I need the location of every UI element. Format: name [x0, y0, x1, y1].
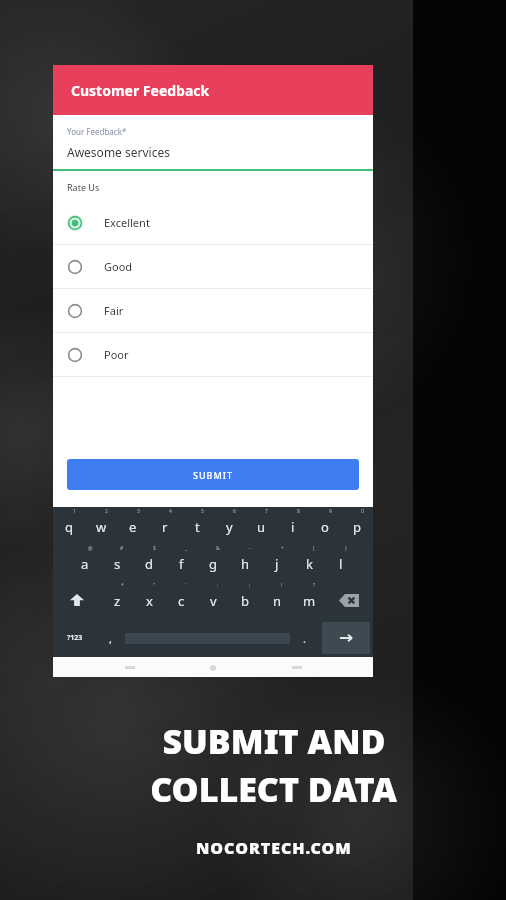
staticText: ,	[109, 631, 112, 646]
staticText: m	[303, 592, 316, 610]
button[interactable]: )	[325, 544, 357, 581]
staticText: :	[217, 582, 219, 589]
button[interactable]: 3	[117, 507, 149, 544]
other: nav	[290, 663, 304, 671]
staticText: j	[275, 555, 279, 573]
staticText: u	[257, 518, 266, 536]
staticText: ;	[249, 582, 251, 589]
staticText: n	[273, 592, 282, 610]
button[interactable]: !	[261, 581, 293, 619]
staticText: a	[81, 555, 89, 573]
staticText: k	[306, 555, 313, 573]
button[interactable]: "	[133, 581, 165, 619]
button[interactable]: -	[229, 544, 261, 581]
button[interactable]: Your Feedback*	[53, 115, 373, 169]
button[interactable]: 5	[181, 507, 213, 544]
staticText: *	[121, 582, 124, 589]
staticText: 1	[73, 508, 76, 515]
other: nav	[123, 663, 137, 671]
staticText: l	[339, 555, 343, 573]
button[interactable]: Backspace	[325, 581, 373, 619]
staticText: SUBMIT	[193, 469, 233, 481]
staticText: w	[96, 518, 107, 536]
button[interactable]: Good	[53, 245, 373, 288]
staticText: x	[146, 592, 153, 610]
button[interactable]: 9	[309, 507, 341, 544]
staticText: '	[185, 582, 187, 589]
button[interactable]: Poor	[53, 333, 373, 376]
staticText: -	[249, 545, 251, 552]
button[interactable]: _	[165, 544, 197, 581]
button[interactable]: :	[197, 581, 229, 619]
button[interactable]: ,	[96, 619, 125, 657]
button[interactable]: '	[165, 581, 197, 619]
staticText: 6	[233, 508, 236, 515]
button[interactable]: 8	[277, 507, 309, 544]
other: nav	[206, 663, 220, 671]
staticText: v	[210, 592, 217, 610]
staticText: (	[313, 545, 315, 552]
button[interactable]: 7	[245, 507, 277, 544]
button[interactable]: .	[290, 619, 319, 657]
staticText: SUBMIT AND	[162, 718, 386, 764]
staticText: #	[120, 545, 124, 552]
staticText: _	[185, 545, 188, 552]
button[interactable]: 4	[149, 507, 181, 544]
staticText: 9	[329, 508, 332, 515]
button[interactable]: *	[101, 581, 133, 619]
staticText: e	[129, 518, 137, 536]
button[interactable]: Fair	[53, 289, 373, 332]
button[interactable]: &	[197, 544, 229, 581]
button[interactable]: SUBMIT	[67, 459, 359, 490]
button[interactable]: 0	[341, 507, 373, 544]
staticText: t	[195, 518, 200, 536]
staticText: q	[65, 518, 73, 536]
button[interactable]: 6	[213, 507, 245, 544]
button[interactable]: ?123	[53, 619, 96, 657]
staticText: "	[153, 582, 156, 589]
button[interactable]: (	[293, 544, 325, 581]
staticText: y	[226, 518, 233, 536]
staticText: Customer Feedback	[71, 81, 210, 100]
staticText: Good	[104, 259, 133, 274]
staticText: 8	[297, 508, 300, 515]
staticText: h	[241, 555, 250, 573]
button[interactable]: ?	[293, 581, 325, 619]
staticText: 2	[105, 508, 108, 515]
button[interactable]: ;	[229, 581, 261, 619]
button[interactable]: $	[133, 544, 165, 581]
button[interactable]: 1	[53, 507, 85, 544]
staticText: c	[178, 592, 185, 610]
staticText: COLLECT DATA	[150, 766, 397, 812]
staticText: i	[291, 518, 295, 536]
staticText: g	[209, 555, 217, 573]
staticText: Awesome services	[67, 144, 170, 160]
staticText: &	[216, 545, 220, 552]
staticText: ?	[313, 582, 316, 589]
button[interactable]: 2	[85, 507, 117, 544]
staticText: 5	[201, 508, 204, 515]
staticText: d	[145, 555, 153, 573]
staticText: )	[345, 545, 347, 552]
button[interactable]: Excellent	[53, 201, 373, 244]
button[interactable]: +	[261, 544, 293, 581]
button[interactable]: Enter	[322, 622, 370, 654]
staticText: z	[114, 592, 121, 610]
staticText: 4	[169, 508, 172, 515]
staticText: b	[241, 592, 249, 610]
staticText: p	[353, 518, 361, 536]
staticText: 7	[265, 508, 268, 515]
button[interactable]: @	[69, 544, 101, 581]
staticText: f	[179, 555, 184, 573]
staticText: @	[88, 545, 93, 552]
button[interactable]: Shift	[53, 581, 101, 619]
button[interactable]: #	[101, 544, 133, 581]
staticText: o	[321, 518, 329, 536]
staticText: +	[281, 545, 284, 552]
staticText: Poor	[104, 347, 129, 362]
staticText: NOCORTECH.COM	[196, 837, 352, 859]
staticText: s	[114, 555, 121, 573]
staticText: Fair	[104, 303, 124, 318]
staticText: Rate Us	[67, 181, 100, 193]
